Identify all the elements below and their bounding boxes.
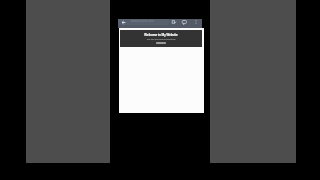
button[interactable]: Add to bookmarks (171, 19, 177, 25)
staticText: www.mysite.com (131, 19, 155, 23)
button[interactable]: More options (193, 19, 199, 25)
button[interactable] (156, 42, 166, 44)
staticText: Your one stop shop for everything (120, 38, 202, 40)
staticText: Welcome to My Website (120, 33, 202, 37)
button[interactable]: Open tabs (181, 19, 187, 25)
button[interactable]: www.mysite.com (118, 19, 169, 25)
